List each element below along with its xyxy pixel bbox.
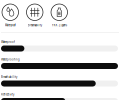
staticText: Waterproof — [1, 40, 15, 44]
button[interactable]: Breathability — [26, 4, 43, 20]
staticText: YKK Zippers — [52, 24, 67, 27]
button[interactable]: YKK Zippers — [51, 4, 67, 20]
staticText: Reflectivity — [1, 93, 14, 96]
staticText: Waterproofing — [1, 58, 20, 61]
staticText: Breathability — [28, 24, 42, 27]
staticText: Breathability — [1, 75, 17, 79]
button[interactable]: Waterproof — [2, 4, 18, 20]
staticText: Waterproof — [5, 24, 16, 27]
